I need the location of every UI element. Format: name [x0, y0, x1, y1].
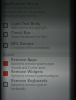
button[interactable]: Light Text Body: [0, 21, 76, 30]
staticText: Remove Keyboards: [11, 78, 48, 83]
button[interactable]: NFC Donate: [0, 41, 76, 50]
button[interactable]: Check Box: [0, 30, 76, 39]
staticText: General: [3, 53, 15, 57]
staticText: Google and Carrier apps: [11, 66, 46, 69]
button[interactable]: Remove Widgets: [0, 69, 76, 78]
staticText: Remove Apps: [11, 57, 37, 62]
staticText: Select the options below to: [3, 6, 42, 10]
staticText: NFC Donate: [11, 41, 34, 46]
staticText: Complete offline donations: [11, 46, 50, 50]
staticText: Application Setup: [3, 1, 39, 6]
staticText: Option to remove system widgets: [11, 74, 59, 78]
staticText: Light Text Body: [11, 21, 41, 26]
staticText: behaves on your device.: [3, 14, 37, 18]
staticText: Option to remove system: [11, 83, 47, 87]
button[interactable]: Remove Apps: [0, 57, 76, 69]
staticText: Check Box: [11, 30, 31, 35]
staticText: Remove Widgets: [11, 69, 43, 74]
staticText: Show checkboxes for lists: [11, 35, 47, 39]
staticText: configure how the application: [3, 10, 45, 14]
staticText: keyboards: [11, 87, 26, 90]
staticText: Make text in the app light: [11, 26, 47, 30]
staticText: Option to remove system apps: [11, 62, 55, 66]
button[interactable]: Remove Keyboards: [0, 78, 76, 90]
